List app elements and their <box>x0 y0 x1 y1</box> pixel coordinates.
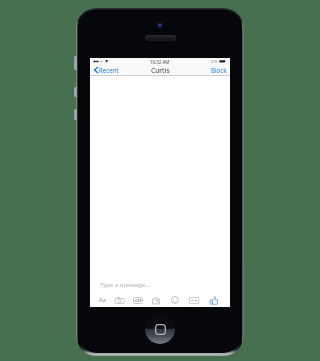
button[interactable]: Recent <box>90 65 122 75</box>
staticText: 67% <box>211 59 218 64</box>
staticText: Type a message... <box>100 281 150 289</box>
button[interactable]: Camera <box>113 294 125 306</box>
button[interactable]: Emoji <box>169 294 181 306</box>
staticText: Curtis <box>151 66 170 75</box>
button[interactable]: Block <box>208 65 230 75</box>
button[interactable]: Like <box>208 294 220 306</box>
staticText: Aa <box>99 296 106 304</box>
button[interactable]: Text format <box>96 294 108 306</box>
button[interactable]: More options <box>188 294 200 306</box>
staticText: 10:32 AM <box>150 59 170 65</box>
button[interactable]: Stickers <box>150 294 162 306</box>
staticText: Block <box>211 66 227 74</box>
staticText: GIF <box>135 298 142 304</box>
button[interactable]: GIF <box>132 294 144 306</box>
staticText: Recent <box>99 66 119 74</box>
